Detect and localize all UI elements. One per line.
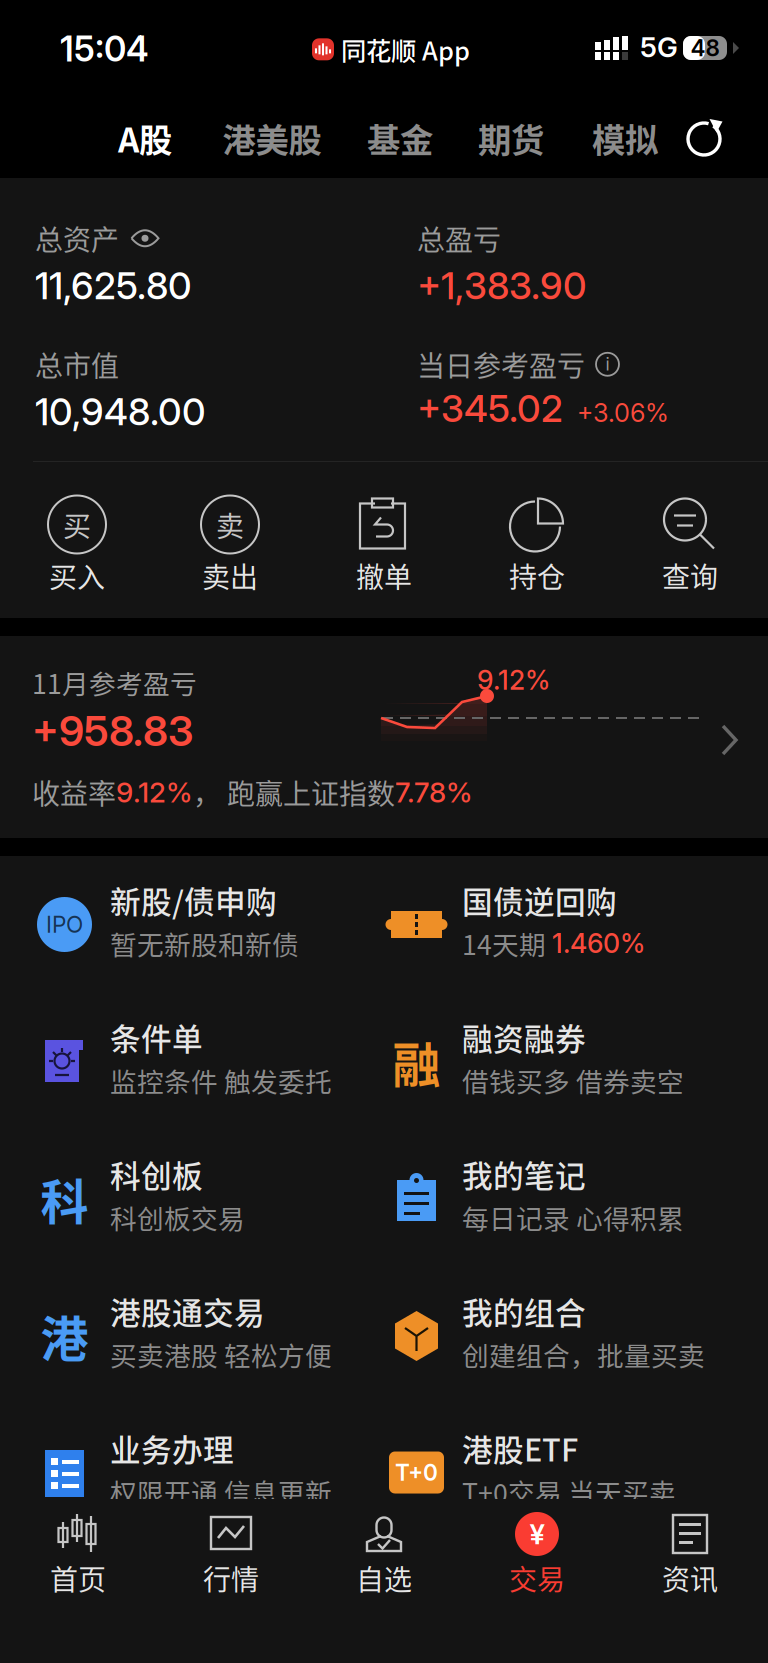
staticText: 5G [640,30,678,64]
staticText: 1.460% [552,927,645,959]
staticText: 权限开通 信息更新 [110,1472,332,1511]
staticText: 自选 [356,1558,412,1598]
staticText: 模拟 [592,114,658,162]
button[interactable]: 撤单 [0,488,140,598]
staticText: 港美股 [222,114,321,162]
staticText: 10,948.00 [35,389,206,434]
button[interactable]: 行情 [0,1509,150,1597]
staticText: 港股ETF [462,1426,578,1470]
staticText: 总资产 [35,218,119,258]
staticText: 科 [40,1164,88,1233]
staticText: +958.83 [32,706,193,756]
button[interactable]: 我的笔记 [0,856,384,993]
staticText: 9.12% [477,664,550,696]
staticText: 我的组合 [462,1289,586,1333]
staticText: i [605,354,609,375]
staticText: 基金 [367,114,433,162]
button[interactable]: 自选 [0,1509,150,1597]
staticText: 港 [40,1301,88,1370]
staticText: ¥ [529,1517,544,1551]
staticText: +3.06% [577,397,669,428]
staticText: 查询 [662,555,718,596]
staticText: 48 [690,34,719,62]
staticText: 期货 [478,114,544,162]
button[interactable]: 国债逆回购 [0,856,384,993]
staticText: 科创板 [110,1152,203,1196]
staticText: 卖出 [202,555,258,596]
button[interactable]: 卖 [0,488,140,598]
staticText: T+0 [395,1459,438,1486]
button[interactable]: 持仓 [0,488,140,598]
staticText: 借钱买多 借券卖空 [462,1061,684,1100]
staticText: 7.78% [395,775,473,809]
staticText: 当日参考盈亏 [417,344,585,384]
staticText: +1,383.90 [417,263,587,308]
staticText: 每日记录 心得积累 [462,1198,684,1237]
staticText: 卖 [216,504,244,545]
staticText: 创建组合，批量买卖 [462,1335,705,1374]
staticText: 撤单 [356,555,412,596]
button[interactable]: 条件单 [0,856,384,993]
staticText: +345.02 [417,386,563,431]
staticText: 总市值 [35,344,119,384]
staticText: 资讯 [662,1558,718,1598]
staticText: 收益率 [32,772,116,812]
button[interactable]: 首页 [0,1509,150,1597]
staticText: T+0交易 当天买卖 [462,1472,676,1511]
staticText: 总盈亏 [417,218,501,258]
staticText: 融 [392,1027,440,1096]
staticText: 9.12% [116,775,193,809]
staticText: 条件单 [110,1015,203,1059]
button[interactable]: ¥ [0,1509,150,1597]
staticText: 交易 [509,1558,565,1598]
staticText: 监控条件 触发委托 [110,1061,332,1100]
button[interactable]: 资讯 [0,1509,150,1597]
staticText: 14天期 [462,924,552,963]
staticText: 新股/债申购 [110,878,277,922]
button[interactable]: 11月参考盈亏 [0,636,768,838]
staticText: 跑赢上证指数 [227,772,395,812]
staticText: 港股通交易 [110,1289,265,1333]
staticText: A股 [118,114,172,162]
staticText: 我的笔记 [462,1152,586,1196]
button[interactable]: 科 [0,856,384,993]
button[interactable]: 业务办理 [0,856,384,993]
staticText: 融资融券 [462,1015,586,1059]
button[interactable]: 我的组合 [0,856,384,993]
staticText: 暂无新股和新债 [110,924,299,963]
staticText: 11,625.80 [35,263,192,308]
staticText: 科创板交易 [110,1198,245,1237]
staticText: 买 [63,504,91,545]
staticText: 持仓 [509,555,565,596]
staticText: 首页 [50,1558,106,1598]
button[interactable]: 买 [0,488,140,598]
button[interactable]: 融 [0,856,384,993]
button[interactable]: 查询 [0,488,140,598]
staticText: 15:04 [60,28,149,70]
button[interactable]: T+0 [0,856,384,993]
staticText: 业务办理 [110,1426,234,1470]
staticText: 国债逆回购 [462,878,617,922]
staticText: IPO [46,911,83,938]
staticText: 同花顺 App [341,31,470,68]
button[interactable]: 港 [0,856,384,993]
staticText: ， [193,772,227,812]
staticText: 行情 [203,1558,259,1598]
staticText: 11月参考盈亏 [32,663,197,702]
staticText: 买入 [49,555,105,596]
staticText: 买卖港股 轻松方便 [110,1335,332,1374]
button[interactable]: IPO [0,856,384,993]
